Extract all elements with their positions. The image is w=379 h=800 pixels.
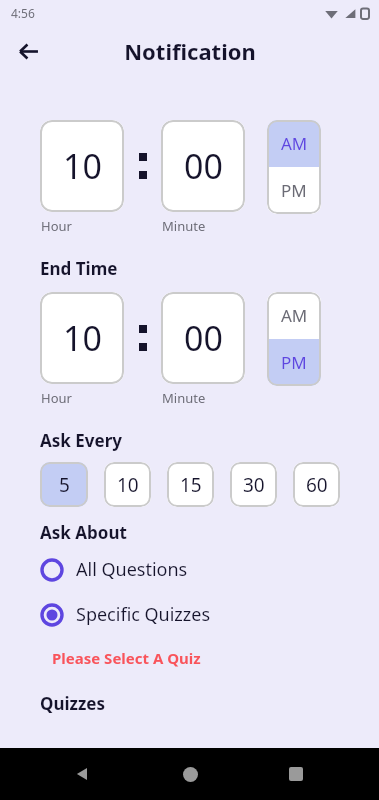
staticText: 00: [184, 143, 223, 189]
button[interactable]: AM: [267, 292, 321, 339]
staticText: Minute: [162, 389, 206, 407]
button[interactable]: Back: [60, 751, 106, 797]
staticText: 60: [306, 472, 328, 498]
staticText: 5: [59, 472, 70, 498]
staticText: Please Select A Quiz: [52, 648, 201, 668]
staticText: End Time: [40, 257, 118, 280]
staticText: 10: [117, 472, 139, 498]
staticText: Ask About: [40, 521, 127, 544]
staticText: Hour: [41, 389, 72, 407]
button[interactable]: 30: [230, 462, 277, 507]
button[interactable]: 00: [161, 292, 245, 384]
staticText: 00: [184, 315, 223, 361]
staticText: Specific Quizzes: [76, 602, 211, 627]
staticText: PM: [281, 351, 307, 374]
staticText: Notification: [124, 36, 256, 66]
button[interactable]: 60: [293, 462, 340, 507]
staticText: PM: [281, 179, 307, 202]
button[interactable]: PM: [267, 339, 321, 386]
button[interactable]: 00: [161, 120, 245, 212]
button[interactable]: PM: [267, 167, 321, 214]
staticText: Hour: [41, 217, 72, 235]
staticText: Ask Every: [40, 429, 122, 452]
button[interactable]: 10: [104, 462, 151, 507]
staticText: All Questions: [76, 557, 188, 582]
button[interactable]: 5: [40, 462, 88, 507]
staticText: 15: [180, 472, 202, 498]
button[interactable]: Specific Quizzes: [0, 595, 379, 634]
staticText: 10: [63, 143, 102, 189]
button[interactable]: 10: [40, 292, 124, 384]
staticText: AM: [281, 132, 308, 155]
button[interactable]: Recent apps: [273, 751, 319, 797]
staticText: 10: [63, 315, 102, 361]
button[interactable]: Back: [10, 33, 46, 69]
button[interactable]: All Questions: [0, 550, 379, 589]
button[interactable]: Home: [167, 751, 213, 797]
staticText: AM: [281, 304, 308, 327]
staticText: 30: [243, 472, 265, 498]
button[interactable]: 15: [167, 462, 214, 507]
button[interactable]: 10: [40, 120, 124, 212]
button[interactable]: AM: [267, 120, 321, 167]
staticText: Minute: [162, 217, 206, 235]
staticText: Quizzes: [40, 692, 106, 715]
staticText: 4:56: [11, 5, 35, 21]
